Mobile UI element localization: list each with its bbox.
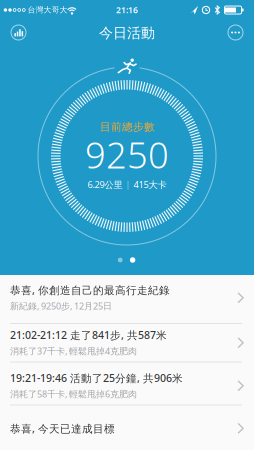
button[interactable] [7, 21, 29, 43]
staticText: | [125, 179, 130, 190]
staticText: 台灣大哥大 [27, 5, 67, 15]
button[interactable]: 19:21-19:46 活動了25分鐘, 共906米 [0, 362, 254, 405]
staticText: 21:16 [116, 4, 138, 16]
staticText: 21:02-21:12 走了841步, 共587米 [10, 328, 167, 342]
button[interactable]: 21:02-21:12 走了841步, 共587米 [0, 323, 254, 362]
staticText: 恭喜, 你創造自己的最高行走紀錄 [10, 283, 170, 297]
staticText: 消耗了37千卡, 輕鬆甩掉4克肥肉 [10, 345, 137, 357]
staticText: 今日活動 [99, 24, 155, 42]
staticText: 19:21-19:46 活動了25分鐘, 共906米 [10, 371, 183, 385]
staticText: 6.29公里 [87, 178, 122, 191]
button[interactable] [224, 21, 246, 43]
staticText: 消耗了58千卡, 輕鬆甩掉6克肥肉 [10, 388, 137, 400]
staticText: 新紀錄, 9250步, 12月25日 [10, 300, 112, 312]
button[interactable]: 恭喜, 今天已達成目標 [0, 405, 254, 450]
staticText: 目前總步數 [100, 120, 155, 134]
button[interactable]: 恭喜, 你創造自己的最高行走紀錄 [0, 275, 254, 323]
staticText: 415大卡 [133, 178, 166, 191]
staticText: 恭喜, 今天已達成目標 [10, 421, 115, 436]
staticText: 9250 [85, 130, 169, 179]
